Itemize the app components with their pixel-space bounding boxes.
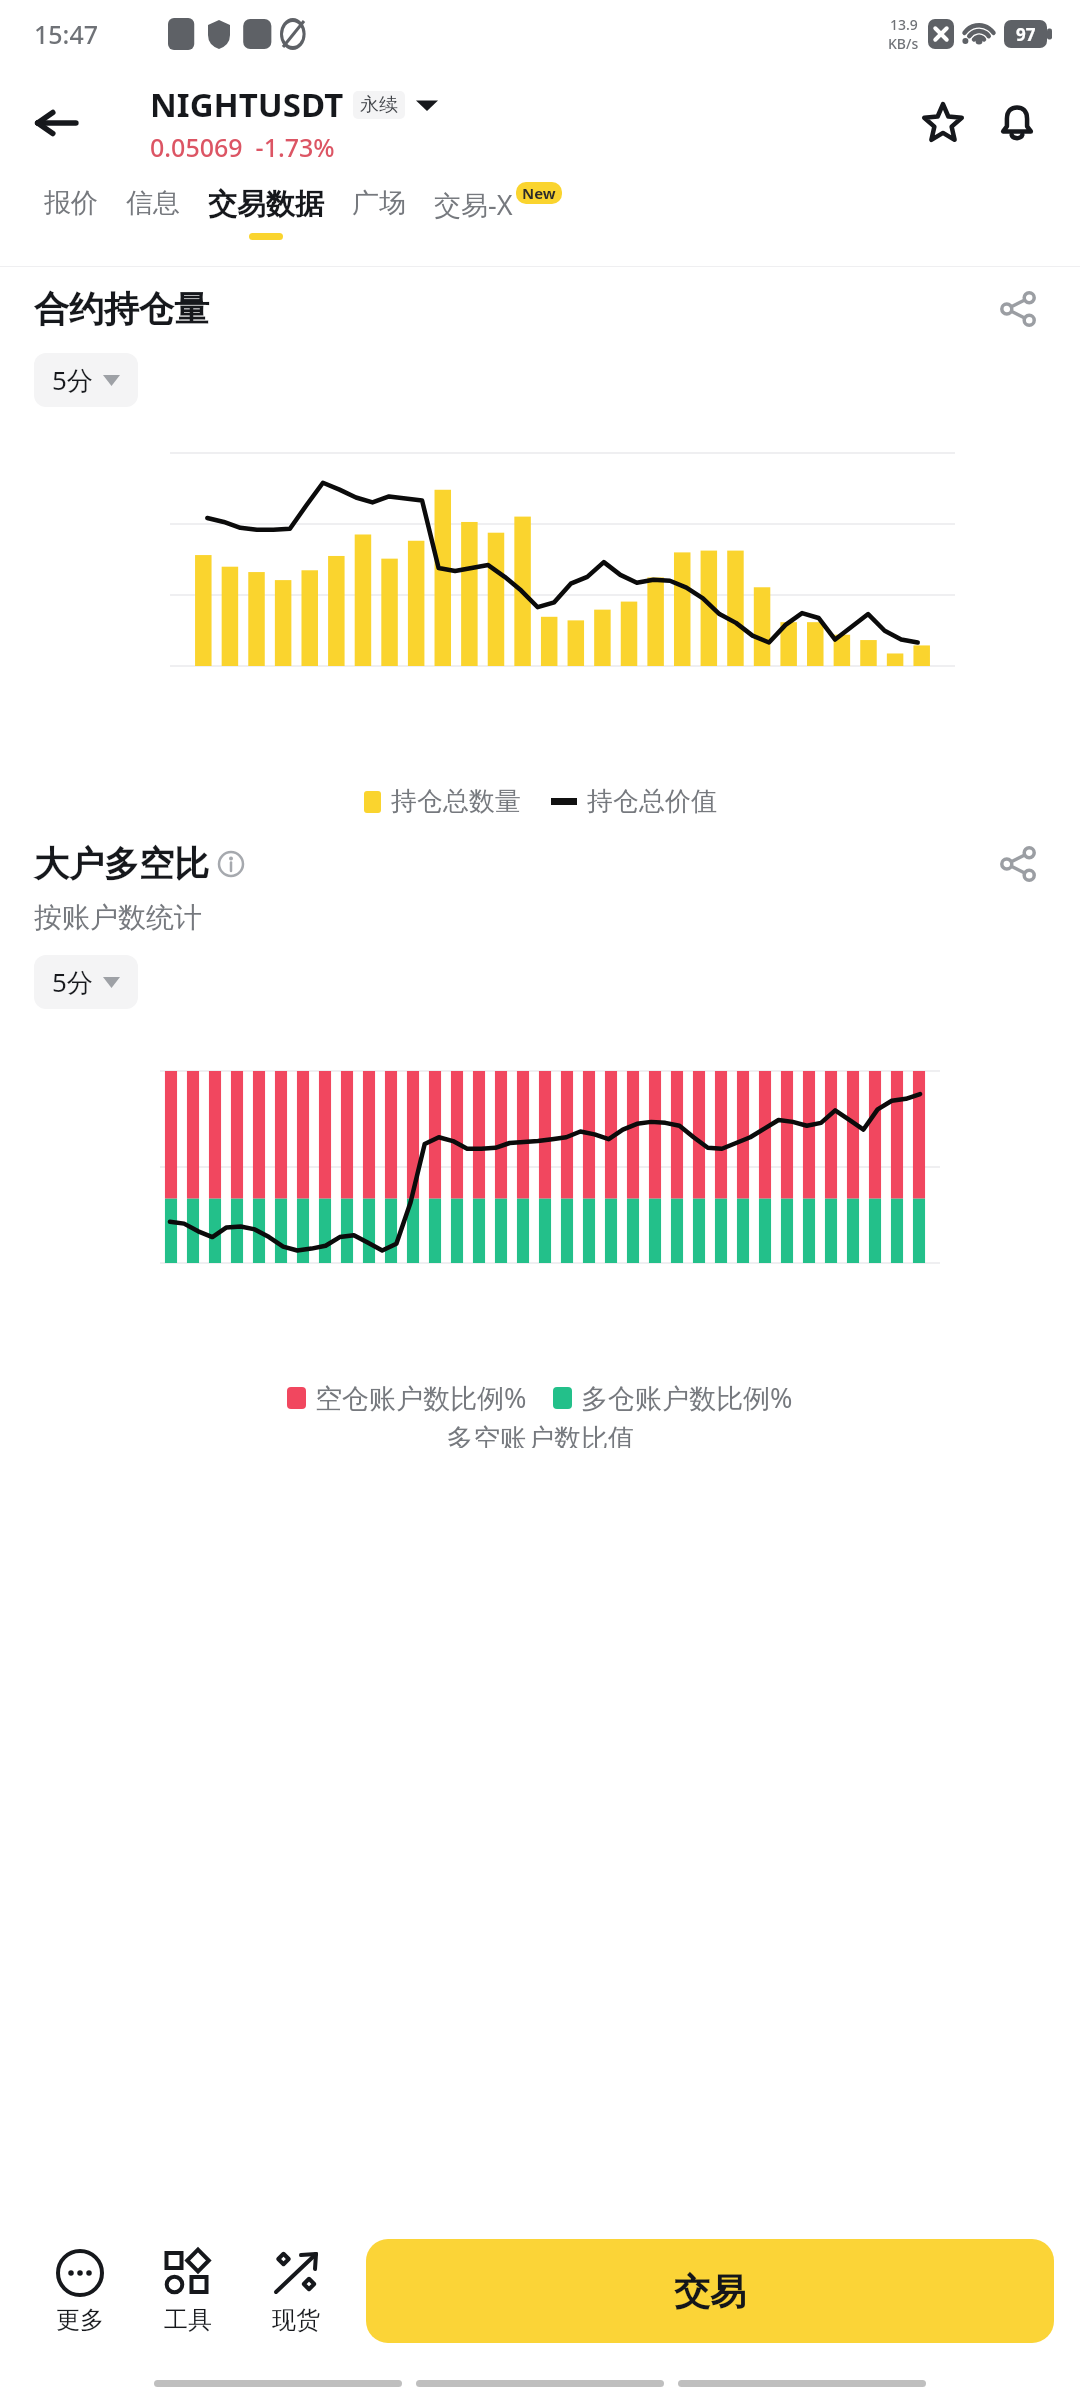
staticText: 报价 [44, 186, 98, 220]
staticText: 永续 [360, 93, 398, 117]
button[interactable]: 现货 [242, 2242, 350, 2341]
button[interactable]: 工具 [134, 2242, 242, 2341]
staticText: 交易数据 [208, 186, 324, 223]
staticText: 工具 [164, 2305, 212, 2335]
staticText: 5分 [52, 362, 93, 398]
staticText: 交易-X [434, 186, 513, 223]
staticText: 现货 [272, 2305, 320, 2335]
staticText: 持仓总数量 [391, 785, 521, 818]
button[interactable]: 广场 [338, 186, 420, 230]
staticText: 广场 [352, 186, 406, 220]
staticText: KB/s [888, 34, 919, 53]
staticText: 多空账户数比值 [446, 1422, 635, 1448]
button[interactable]: 信息 [112, 186, 194, 230]
staticText: 持仓总价值 [587, 785, 717, 818]
staticText: 15:47 [34, 17, 99, 51]
button[interactable]: Back [22, 88, 92, 158]
staticText: 信息 [126, 186, 180, 220]
staticText: 13.9 [890, 15, 918, 34]
button[interactable]: 交易数据 [194, 186, 338, 240]
staticText: 更多 [56, 2305, 104, 2335]
button[interactable]: 更多 [26, 2242, 134, 2341]
button[interactable]: 5分 [34, 353, 138, 407]
button[interactable]: Notifications [980, 86, 1054, 160]
button[interactable]: 5分 [34, 955, 138, 1009]
staticText: 按账户数统计 [34, 900, 202, 935]
staticText: 0.05069 -1.73% [150, 130, 335, 164]
staticText: 97 [1016, 23, 1036, 46]
staticText: 5分 [52, 964, 93, 1000]
button[interactable]: 交易-X [420, 186, 527, 233]
staticText: 合约持仓量 [34, 287, 209, 331]
staticText: NIGHTUSDT [150, 82, 344, 127]
button[interactable]: NIGHTUSDT [150, 82, 438, 127]
staticText: New [522, 183, 556, 203]
staticText: 多仓账户数比例% [581, 1379, 793, 1416]
button[interactable]: Share [990, 836, 1046, 892]
staticText: 交易 [674, 2269, 746, 2314]
button[interactable]: Favorite [906, 86, 980, 160]
staticText: 空仓账户数比例% [315, 1379, 527, 1416]
button[interactable]: Share [990, 281, 1046, 337]
staticText: 大户多空比 [34, 842, 209, 886]
button[interactable]: 报价 [30, 186, 112, 230]
button[interactable]: 交易 [366, 2239, 1054, 2343]
